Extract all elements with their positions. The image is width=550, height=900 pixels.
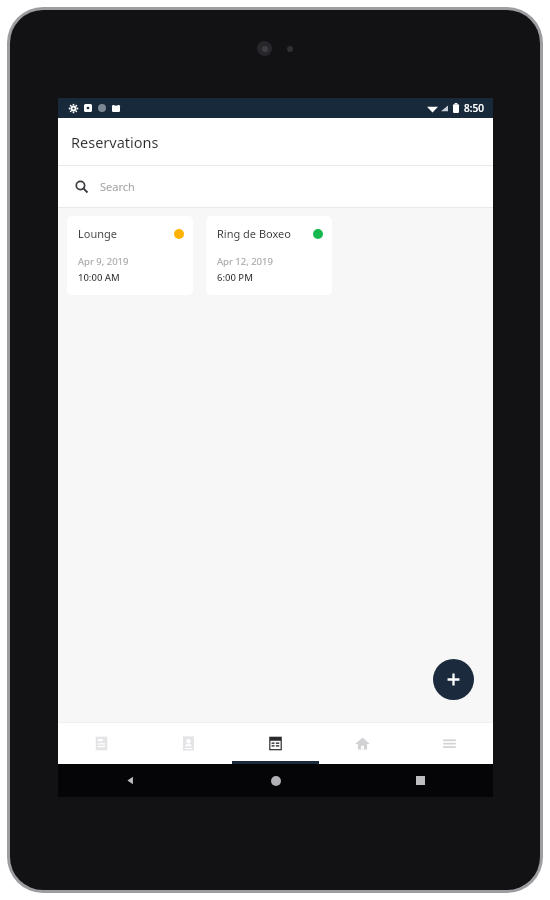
staticText: 8:50 <box>464 101 484 115</box>
staticText: Apr 12, 2019 <box>217 255 273 268</box>
button[interactable]: Reservations <box>232 722 319 764</box>
staticText: Search <box>100 179 135 194</box>
button[interactable]: Search <box>58 166 493 207</box>
button[interactable]: Home <box>319 722 406 764</box>
button[interactable]: Receipts <box>58 722 145 764</box>
button[interactable]: Home <box>271 776 281 786</box>
button[interactable]: Back <box>125 775 136 786</box>
button[interactable]: Add reservation <box>433 659 474 700</box>
button[interactable]: Ring de Boxeo <box>206 216 332 295</box>
staticText: 10:00 AM <box>78 271 120 284</box>
staticText: Lounge <box>78 226 117 241</box>
staticText: Ring de Boxeo <box>217 226 291 241</box>
staticText: 6:00 PM <box>217 271 253 284</box>
other: Search <box>75 180 88 193</box>
staticText: Reservations <box>71 132 159 152</box>
button[interactable]: Menu <box>406 722 493 764</box>
button[interactable]: Lounge <box>67 216 193 295</box>
button[interactable]: Contacts <box>145 722 232 764</box>
staticText: Apr 9, 2019 <box>78 255 129 268</box>
